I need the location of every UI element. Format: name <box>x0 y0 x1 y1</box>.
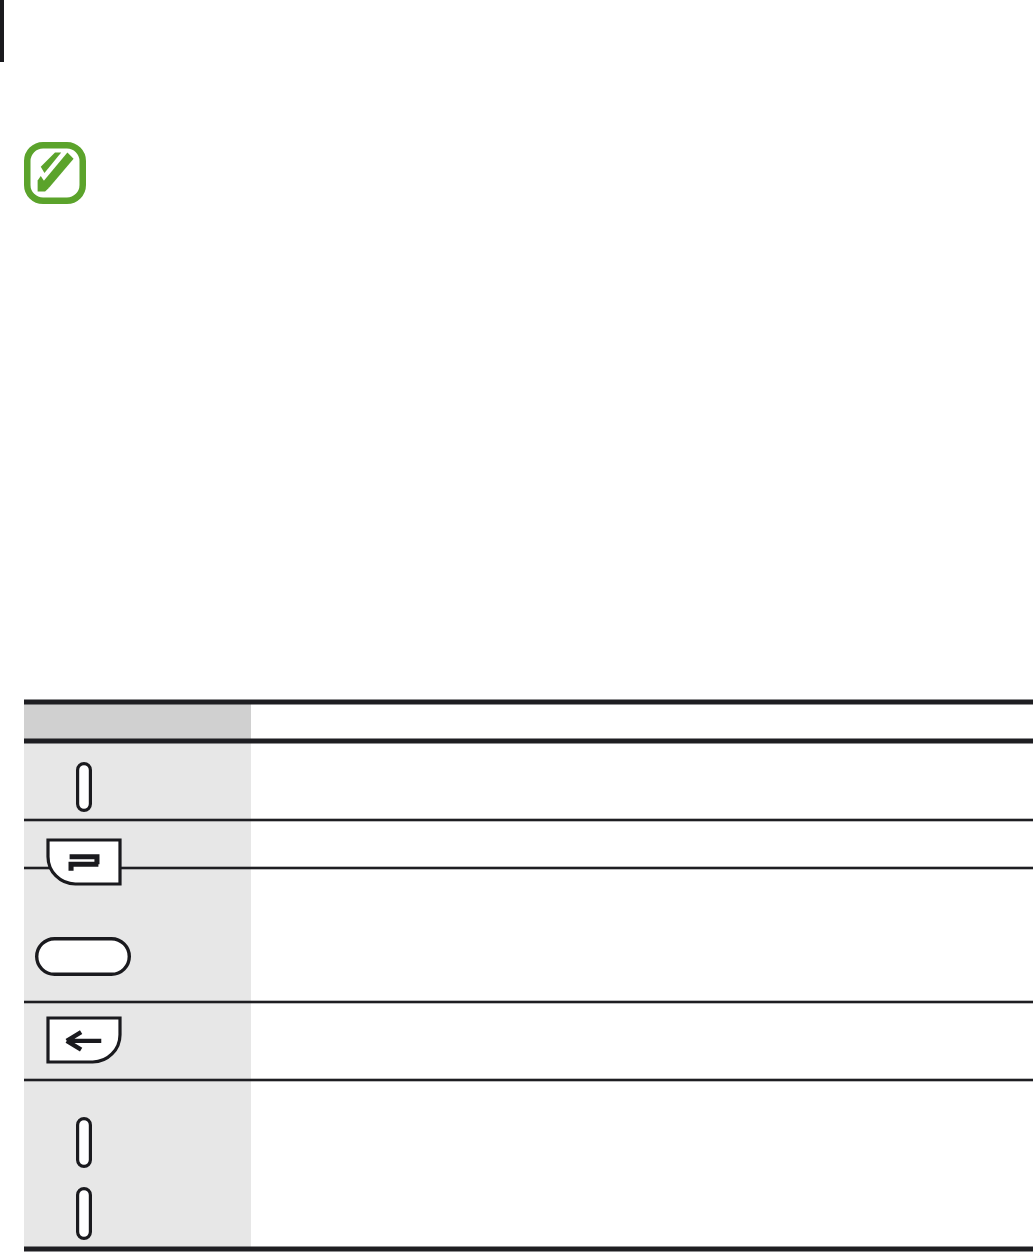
button[interactable]: Note <box>24 142 86 204</box>
